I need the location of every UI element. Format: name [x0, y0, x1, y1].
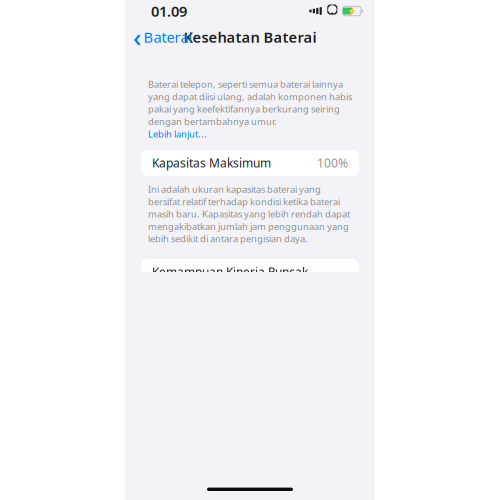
- staticText: 01.09: [151, 1, 187, 21]
- staticText: Lebih lanjut...: [148, 128, 207, 140]
- button[interactable]: ‹: [125, 22, 200, 52]
- staticText: ⚡: [347, 6, 357, 15]
- button[interactable]: Kapasitas Maksimum: [141, 150, 359, 176]
- button[interactable]: Kemampuan Kinerja Puncak: [141, 259, 359, 285]
- staticText: Baterai telepon, seperti semua baterai l…: [148, 78, 352, 128]
- staticText: Kesehatan Baterai: [183, 27, 316, 47]
- staticText: Kemampuan Kinerja Puncak: [152, 264, 308, 280]
- staticText: Kapasitas Maksimum: [152, 155, 271, 171]
- staticText: 100%: [317, 155, 348, 171]
- staticText: Ini adalah ukuran kapasitas baterai yang…: [148, 183, 350, 245]
- button[interactable]: Lebih lanjut...: [148, 128, 207, 140]
- staticText: ‹: [133, 20, 141, 54]
- staticText: Baterai: [143, 27, 192, 47]
